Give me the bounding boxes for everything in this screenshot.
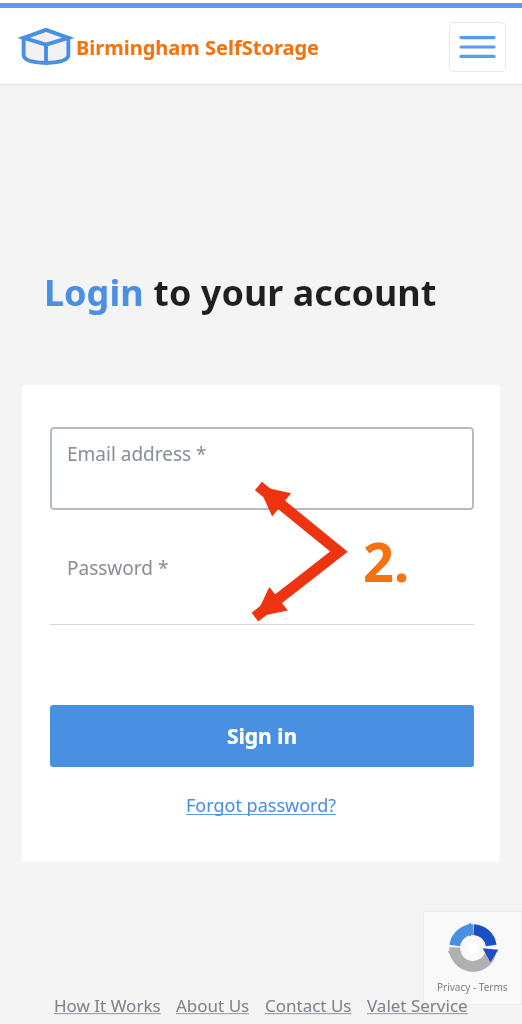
staticText: Birmingham SelfStorage <box>76 34 319 61</box>
button[interactable]: About Us <box>176 994 250 1017</box>
button[interactable]: Email address * <box>50 427 474 510</box>
button[interactable]: Valet Service <box>367 994 468 1017</box>
button[interactable]: Password * <box>50 543 474 625</box>
button[interactable]: How It Works <box>54 994 161 1017</box>
staticText: Forgot password? <box>186 793 337 818</box>
button[interactable]: Birmingham SelfStorage <box>20 27 319 67</box>
staticText: Privacy - Terms <box>437 980 508 994</box>
button[interactable]: Sign in <box>50 705 474 767</box>
staticText: Contact Us <box>265 994 352 1017</box>
button[interactable]: Forgot password? <box>22 793 500 818</box>
button[interactable]: reCAPTCHA privacy and terms <box>423 911 522 1005</box>
staticText: How It Works <box>54 994 161 1017</box>
staticText: About Us <box>176 994 250 1017</box>
button[interactable]: Open menu <box>449 22 506 72</box>
staticText: Valet Service <box>367 994 468 1017</box>
staticText: 2. <box>363 524 410 598</box>
staticText: Login <box>44 268 144 317</box>
staticText: Sign in <box>227 722 298 751</box>
button[interactable]: Contact Us <box>265 994 352 1017</box>
staticText: Email address * <box>67 441 207 467</box>
staticText: to your account <box>144 268 437 317</box>
staticText: Password * <box>67 555 169 581</box>
